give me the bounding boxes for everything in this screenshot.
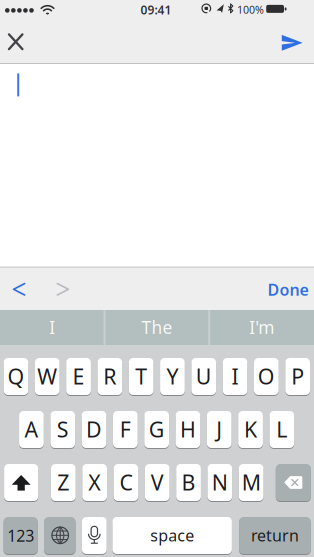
staticText: A xyxy=(24,415,38,443)
staticText: O xyxy=(258,362,275,390)
staticText: F xyxy=(120,415,131,443)
staticText: The xyxy=(141,316,172,339)
staticText: Y xyxy=(166,362,178,390)
staticText: T xyxy=(135,362,147,390)
staticText: K xyxy=(244,415,257,443)
staticText: 123 xyxy=(7,525,34,546)
staticText: X xyxy=(88,468,101,496)
staticText: L xyxy=(276,415,287,443)
staticText: G xyxy=(149,415,165,443)
staticText: J xyxy=(216,415,222,443)
staticText: V xyxy=(151,468,164,496)
staticText: P xyxy=(291,362,304,390)
staticText: I'm xyxy=(249,316,274,339)
staticText: I xyxy=(49,316,55,339)
staticText: space xyxy=(150,525,194,546)
staticText: M xyxy=(242,468,261,496)
staticText: B xyxy=(182,468,196,496)
staticText: I xyxy=(231,362,238,390)
staticText: D xyxy=(86,415,102,443)
staticText: H xyxy=(180,415,196,443)
staticText: W xyxy=(37,362,57,390)
staticText: Q xyxy=(7,362,24,390)
staticText: E xyxy=(72,362,84,390)
staticText: 09:41 xyxy=(140,2,171,18)
staticText: C xyxy=(119,468,132,496)
staticText: return xyxy=(251,525,299,546)
staticText: R xyxy=(103,362,116,390)
staticText: Done xyxy=(267,279,308,300)
staticText: Z xyxy=(57,468,69,496)
staticText: 100% xyxy=(237,3,264,17)
staticText: U xyxy=(196,362,212,390)
staticText: S xyxy=(57,415,69,443)
staticText: N xyxy=(212,468,228,496)
